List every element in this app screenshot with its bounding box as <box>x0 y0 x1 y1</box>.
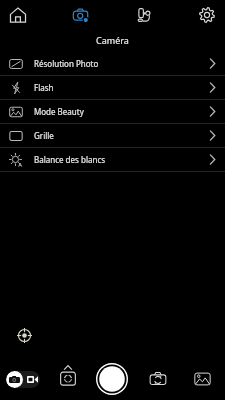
button[interactable]: Camera <box>69 3 93 27</box>
button[interactable]: Shutter <box>96 363 128 395</box>
staticText: Mode Beauty <box>34 106 84 117</box>
staticText: Résolution Photo <box>34 58 99 69</box>
button[interactable]: Gallery <box>192 368 213 389</box>
button[interactable]: Grille <box>0 124 225 147</box>
button[interactable]: Switch photo or video mode <box>6 371 40 388</box>
staticText: Caméra <box>96 34 129 46</box>
button[interactable]: Switch camera <box>147 368 168 389</box>
button[interactable]: Flash <box>0 76 225 99</box>
button[interactable]: More modes <box>58 363 78 388</box>
button[interactable]: Mode Beauty <box>0 100 225 123</box>
button[interactable]: Settings <box>195 3 219 27</box>
button[interactable]: Home <box>6 3 30 27</box>
staticText: Balance des blancs <box>34 154 106 165</box>
staticText: Grille <box>34 130 54 141</box>
button[interactable]: Balance des blancs <box>0 148 225 171</box>
button[interactable]: Résolution Photo <box>0 52 225 75</box>
button[interactable]: Video mode <box>132 3 156 27</box>
staticText: Flash <box>34 82 54 93</box>
button[interactable]: Focus <box>16 327 32 343</box>
